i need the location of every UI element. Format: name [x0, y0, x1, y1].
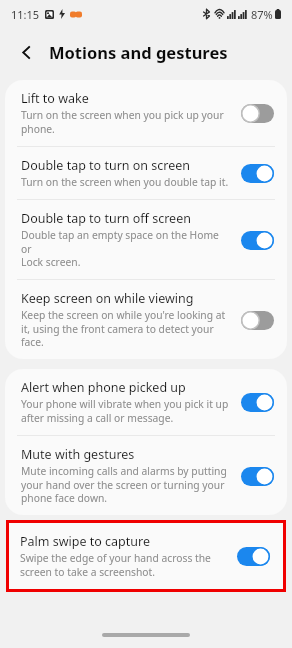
staticText: Keep the screen on while you're looking … [21, 308, 226, 349]
staticText: 87% [251, 7, 273, 22]
staticText: 11:15 [11, 7, 40, 22]
button[interactable]: Palm swipe to capture [9, 523, 283, 589]
button[interactable]: Switch on [235, 159, 279, 187]
button[interactable]: Switch off [235, 99, 279, 127]
staticText: Turn on the screen when you double tap i… [21, 175, 229, 189]
staticText: Turn on the screen when you pick up your… [21, 108, 224, 136]
button[interactable]: Double tap to turn on screen [5, 147, 287, 199]
staticText: Lift to wake [21, 90, 89, 107]
staticText: Double tap to turn on screen [21, 157, 191, 174]
staticText: Keep screen on while viewing [21, 290, 194, 307]
staticText: Alert when phone picked up [21, 379, 186, 396]
button[interactable]: Switch on [235, 388, 279, 416]
button[interactable]: Mute with gestures [5, 436, 287, 515]
button[interactable]: Back [13, 39, 39, 65]
button[interactable]: Switch off [235, 306, 279, 334]
staticText: Swipe the edge of your hand across the s… [20, 551, 211, 579]
staticText: Mute with gestures [21, 446, 135, 463]
staticText: Double tap an empty space on the Home or… [21, 228, 229, 269]
staticText: Motions and gestures [49, 41, 228, 63]
staticText: Double tap to turn off screen [21, 210, 191, 227]
staticText: Mute incoming calls and alarms by puttin… [21, 464, 227, 505]
button[interactable]: Alert when phone picked up [5, 369, 287, 435]
button[interactable]: Switch on [231, 542, 275, 570]
staticText: Palm swipe to capture [20, 533, 150, 550]
button[interactable]: Switch on [235, 226, 279, 254]
button[interactable]: Double tap to turn off screen [5, 200, 287, 279]
button[interactable]: Keep screen on while viewing [5, 280, 287, 359]
staticText: Your phone will vibrate when you pick it… [21, 397, 229, 425]
button[interactable]: Switch on [235, 462, 279, 490]
button[interactable]: Lift to wake [5, 80, 287, 146]
